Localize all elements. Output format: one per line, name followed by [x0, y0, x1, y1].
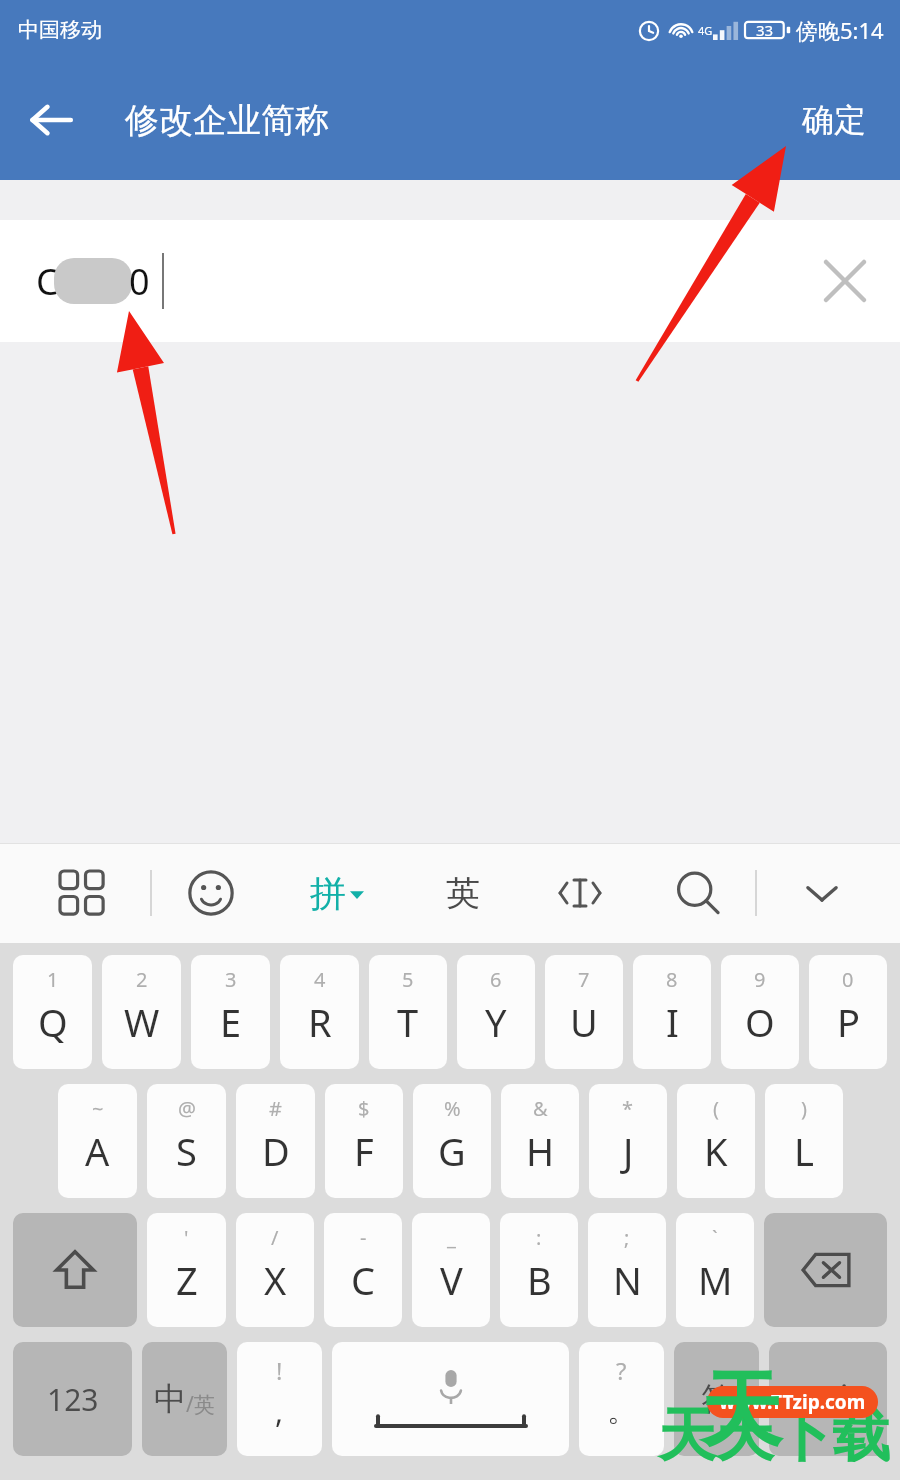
button[interactable]: 中: [142, 1342, 227, 1456]
staticText: 1: [47, 966, 59, 993]
button[interactable]: &: [501, 1084, 579, 1198]
staticText: 0: [129, 257, 150, 306]
staticText: 0: [842, 966, 854, 993]
staticText: V: [440, 1254, 463, 1306]
button[interactable]: *: [589, 1084, 667, 1198]
button[interactable]: ~: [58, 1084, 137, 1198]
staticText: N: [613, 1254, 642, 1306]
button[interactable]: Search: [638, 843, 755, 943]
staticText: R: [308, 996, 332, 1048]
button[interactable]: Emoji: [152, 843, 269, 943]
staticText: ,: [275, 1391, 284, 1432]
staticText: H: [526, 1125, 555, 1177]
staticText: J: [623, 1125, 634, 1177]
button[interactable]: ): [765, 1084, 843, 1198]
staticText: K: [704, 1125, 728, 1177]
staticText: E: [220, 996, 242, 1048]
staticText: L: [794, 1125, 814, 1177]
button[interactable]: @: [147, 1084, 226, 1198]
staticText: #: [269, 1095, 282, 1122]
staticText: W: [124, 996, 160, 1048]
staticText: 4: [314, 966, 326, 993]
button[interactable]: 拼: [269, 843, 404, 943]
staticText: I: [666, 996, 679, 1048]
button[interactable]: 2: [102, 955, 181, 1069]
staticText: (: [713, 1095, 719, 1122]
button[interactable]: 5: [369, 955, 447, 1069]
button[interactable]: 3: [191, 955, 270, 1069]
staticText: :: [536, 1224, 542, 1251]
staticText: 2: [136, 966, 148, 993]
button[interactable]: 符: [674, 1342, 759, 1456]
staticText: ': [184, 1224, 189, 1251]
button[interactable]: 123: [13, 1342, 132, 1456]
button[interactable]: Back: [22, 91, 80, 149]
staticText: S: [176, 1125, 197, 1177]
button[interactable]: -: [324, 1213, 402, 1327]
button[interactable]: Shift: [13, 1213, 137, 1327]
staticText: M: [698, 1254, 733, 1306]
button[interactable]: ': [147, 1213, 226, 1327]
button[interactable]: %: [413, 1084, 491, 1198]
staticText: /: [271, 1224, 279, 1251]
button[interactable]: Enter: [769, 1342, 887, 1456]
staticText: 拼: [310, 871, 346, 916]
staticText: B: [527, 1254, 552, 1306]
staticText: Y: [485, 996, 507, 1048]
staticText: 中: [154, 1379, 186, 1419]
staticText: 修改企业简称: [125, 99, 329, 142]
staticText: ;: [624, 1224, 630, 1251]
staticText: 。: [607, 1392, 637, 1430]
staticText: &: [533, 1095, 548, 1122]
button[interactable]: #: [236, 1084, 315, 1198]
button[interactable]: 确定: [768, 82, 900, 158]
staticText: P: [837, 996, 860, 1048]
button[interactable]: 8: [633, 955, 711, 1069]
button[interactable]: :: [500, 1213, 578, 1327]
button[interactable]: ?: [579, 1342, 664, 1456]
button[interactable]: Move cursor: [521, 843, 638, 943]
staticText: X: [264, 1254, 287, 1306]
button[interactable]: !: [237, 1342, 322, 1456]
staticText: ~: [92, 1095, 104, 1122]
staticText: C: [36, 257, 59, 306]
staticText: _: [447, 1224, 456, 1251]
button[interactable]: Hide keyboard: [757, 843, 886, 943]
button[interactable]: $: [325, 1084, 403, 1198]
staticText: T: [397, 996, 419, 1048]
button[interactable]: 9: [721, 955, 799, 1069]
staticText: D: [262, 1125, 290, 1177]
button[interactable]: /: [236, 1213, 314, 1327]
button[interactable]: `: [676, 1213, 754, 1327]
staticText: www.TTzip.com: [719, 1389, 866, 1415]
button[interactable]: _: [412, 1213, 490, 1327]
staticText: ?: [616, 1354, 627, 1387]
button[interactable]: 4: [280, 955, 359, 1069]
button[interactable]: Clear text: [816, 252, 874, 310]
staticText: 123: [47, 1379, 99, 1420]
button[interactable]: ;: [588, 1213, 666, 1327]
button[interactable]: Backspace: [764, 1213, 887, 1327]
staticText: 确定: [802, 100, 866, 140]
staticText: O: [745, 996, 775, 1048]
staticText: Q: [38, 996, 68, 1048]
button[interactable]: 英: [404, 843, 521, 943]
staticText: 天: [700, 1359, 782, 1462]
button[interactable]: 0: [809, 955, 887, 1069]
staticText: @: [178, 1095, 196, 1122]
button[interactable]: Space: [332, 1342, 569, 1456]
staticText: Z: [176, 1254, 198, 1306]
staticText: 5: [402, 966, 414, 993]
button[interactable]: 1: [13, 955, 92, 1069]
staticText: 天天下载: [658, 1399, 890, 1472]
button[interactable]: 6: [457, 955, 535, 1069]
staticText: 33: [756, 20, 774, 40]
staticText: *: [622, 1095, 634, 1122]
staticText: 中国移动: [18, 17, 102, 43]
staticText: %: [444, 1095, 461, 1122]
button[interactable]: (: [677, 1084, 755, 1198]
staticText: 符: [701, 1379, 733, 1419]
button[interactable]: 7: [545, 955, 623, 1069]
button[interactable]: Keyboard layouts: [14, 843, 150, 943]
staticText: $: [358, 1095, 370, 1122]
